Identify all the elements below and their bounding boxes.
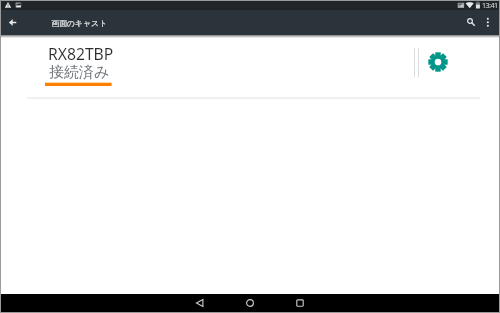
staticText: RX82TBP: [48, 43, 114, 64]
staticText: 13:41: [482, 0, 498, 10]
button[interactable]: Back: [0, 10, 26, 35]
button[interactable]: Search: [460, 10, 482, 35]
staticText: 接続済み: [49, 63, 110, 82]
button[interactable]: Back: [188, 294, 212, 312]
button[interactable]: RX82TBP: [0, 35, 500, 98]
button[interactable]: Settings: [419, 35, 480, 98]
button[interactable]: More options: [479, 10, 497, 35]
staticText: 画面のキャスト: [51, 18, 108, 28]
button[interactable]: Home: [238, 294, 262, 312]
button[interactable]: Recent apps: [288, 294, 312, 312]
